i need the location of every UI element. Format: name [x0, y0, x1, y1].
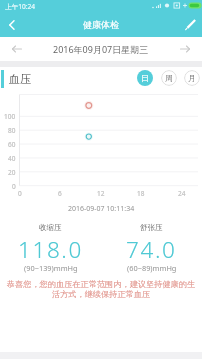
staticText: 60	[8, 140, 16, 149]
staticText: 血压	[9, 72, 31, 86]
staticText: 恭喜您，您的血压在正常范围内，建议坚持健康的生活方式，继续保持正常血压	[5, 279, 197, 299]
staticText: 2016年09月07日星期三	[53, 43, 149, 55]
button[interactable]: 月	[184, 70, 200, 86]
button[interactable]: Edit	[178, 12, 202, 37]
staticText: 0	[18, 189, 22, 198]
staticText: 上午10:24	[5, 2, 36, 11]
staticText: 日	[141, 73, 149, 83]
button[interactable]: Back	[0, 12, 24, 37]
staticText: 80	[8, 126, 16, 135]
staticText: 月	[188, 73, 196, 83]
staticText: 40	[8, 154, 16, 163]
staticText: 12	[97, 189, 105, 198]
staticText: 18	[137, 189, 145, 198]
staticText: 100	[4, 112, 16, 121]
button[interactable]: Previous day	[0, 37, 34, 61]
staticText: 2016-09-07 10:11:34	[68, 204, 135, 214]
button[interactable]: 日	[137, 70, 153, 86]
staticText: 118.0	[18, 234, 83, 265]
staticText: 6	[58, 189, 62, 198]
staticText: (90~139)mmHg	[24, 263, 78, 273]
staticText: 健康体检	[83, 19, 119, 30]
button[interactable]: Next day	[168, 37, 202, 61]
staticText: 20	[8, 168, 16, 177]
staticText: 0	[12, 182, 16, 191]
staticText: 24	[178, 189, 186, 198]
staticText: 收缩压	[39, 223, 62, 232]
staticText: 舒张压	[140, 223, 163, 232]
staticText: 74.0	[126, 234, 177, 265]
staticText: 周	[165, 73, 173, 83]
button[interactable]: 周	[161, 70, 177, 86]
staticText: (60~89)mmHg	[127, 263, 177, 273]
